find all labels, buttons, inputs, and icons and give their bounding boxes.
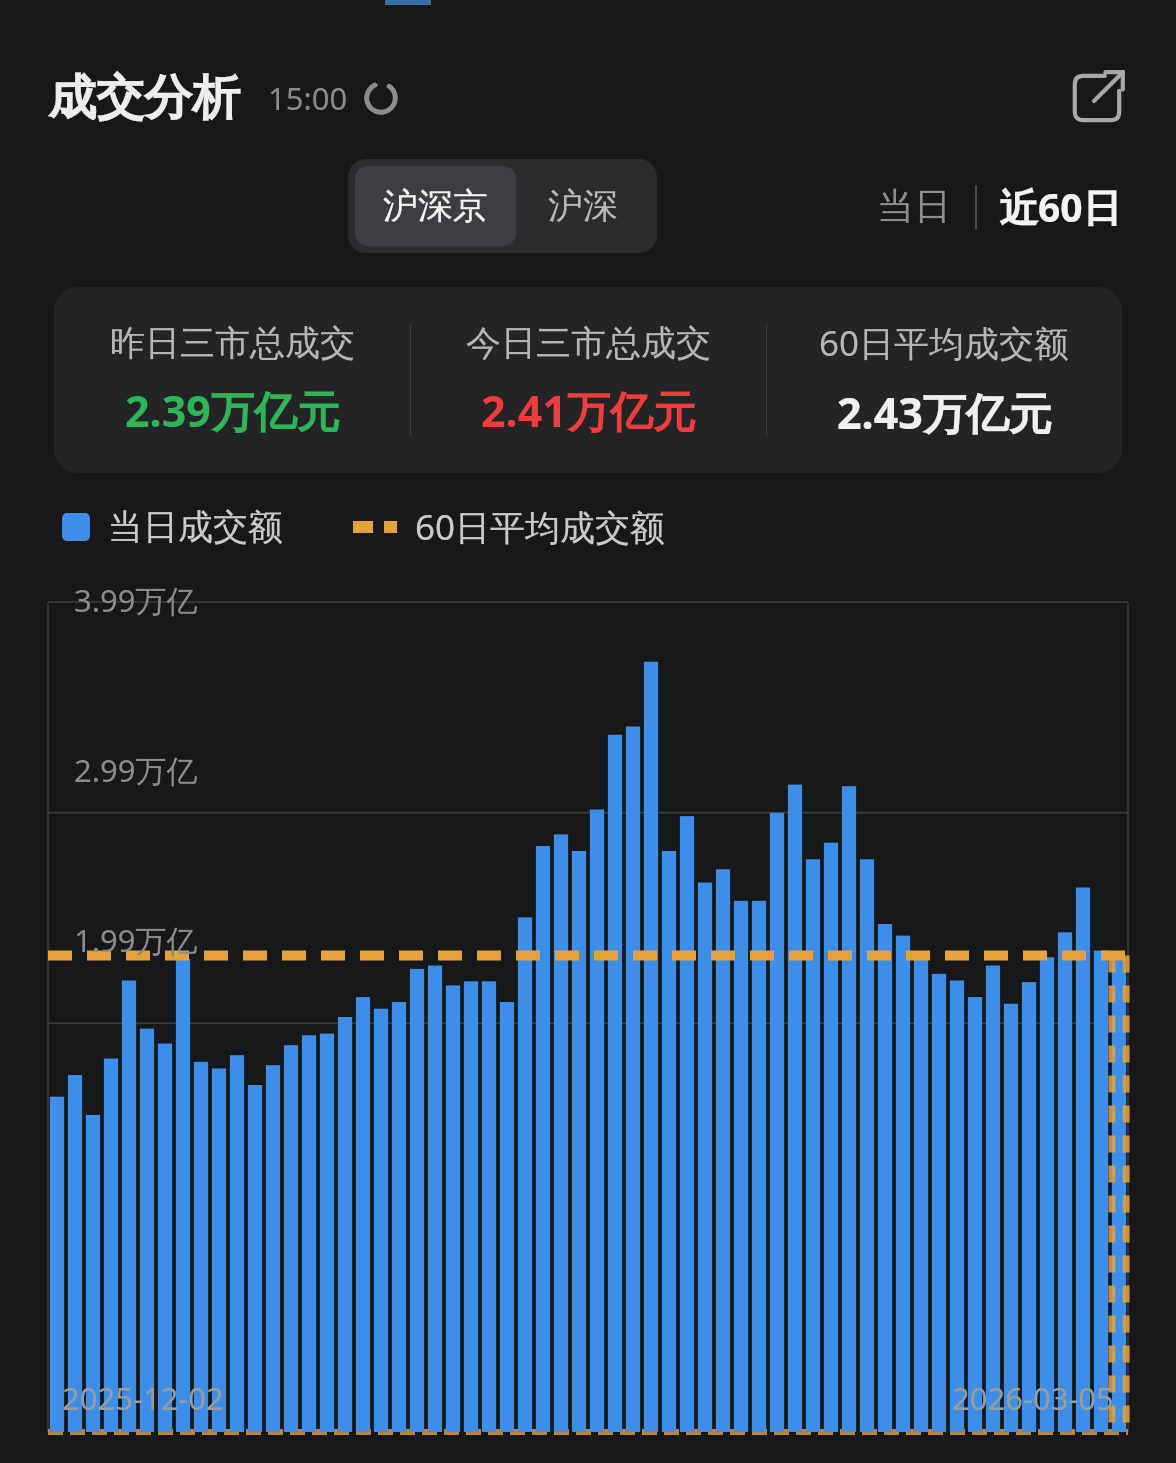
button[interactable]: 沪深: [516, 166, 650, 246]
button[interactable]: 近60日: [993, 168, 1128, 245]
button[interactable]: Open in new window: [1060, 61, 1134, 135]
staticText: 60日平均成交额: [415, 503, 666, 551]
staticText: 2.39万亿元: [125, 381, 340, 440]
staticText: 沪深京: [383, 184, 488, 228]
staticText: 2.43万亿元: [837, 383, 1052, 442]
staticText: 近60日: [999, 180, 1122, 233]
staticText: 2025-12-02: [62, 1377, 224, 1419]
staticText: 3.99万亿: [74, 579, 198, 621]
staticText: 15:00: [268, 77, 348, 119]
staticText: 成交分析: [48, 68, 240, 128]
staticText: 昨日三市总成交: [110, 321, 355, 365]
staticText: 2.99万亿: [74, 749, 198, 791]
button[interactable]: 沪深京: [355, 166, 516, 246]
staticText: 1.99万亿: [74, 919, 198, 961]
staticText: 当日: [877, 183, 951, 230]
staticText: 60日平均成交额: [819, 319, 1070, 367]
staticText: 2026-03-05: [952, 1377, 1114, 1419]
button[interactable]: 当日: [869, 171, 959, 242]
button[interactable]: 昨日三市总成交: [54, 287, 1122, 473]
staticText: 2.41万亿元: [481, 381, 696, 440]
staticText: 当日成交额: [108, 505, 283, 549]
staticText: 今日三市总成交: [466, 321, 711, 365]
staticText: 沪深: [548, 184, 618, 228]
